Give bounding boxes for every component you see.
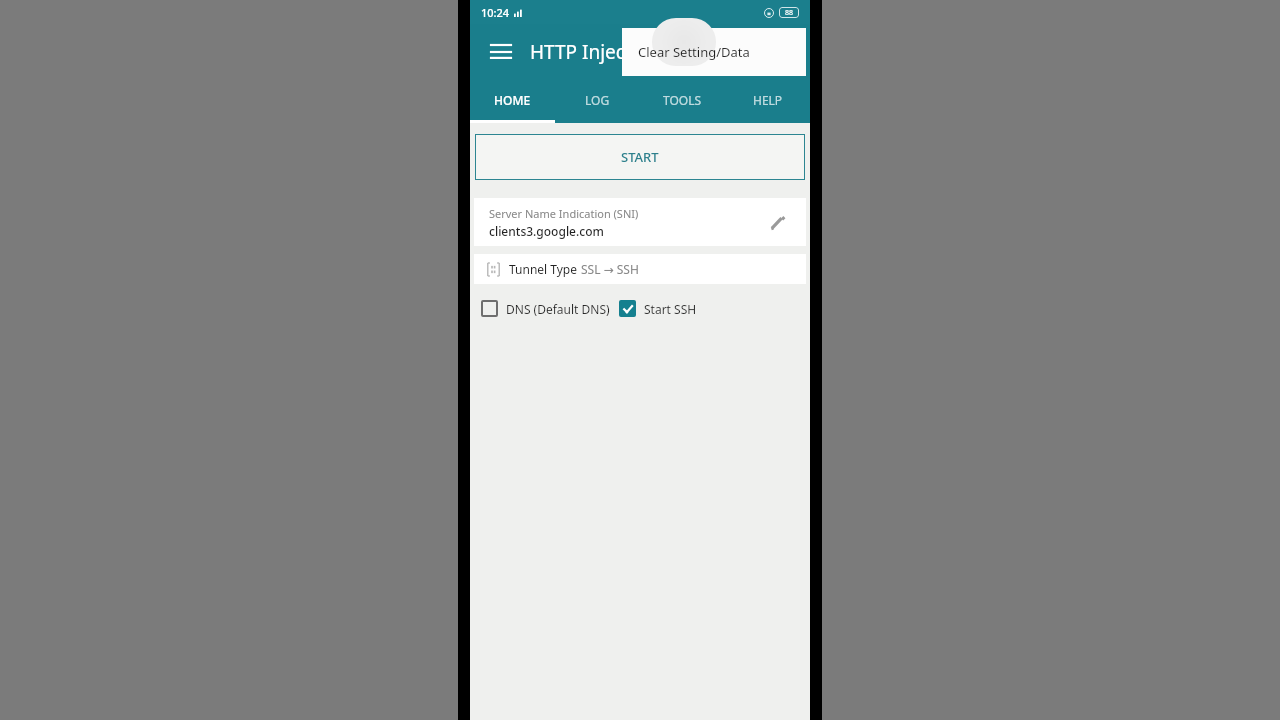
- staticText: Server Name Indication (SNI): [489, 206, 639, 221]
- button[interactable]: LOG: [555, 80, 640, 120]
- staticText: clients3.google.com: [489, 223, 604, 239]
- staticText: HTTP Injector: [530, 39, 652, 65]
- staticText: LOG: [585, 92, 610, 108]
- staticText: HELP: [753, 92, 783, 108]
- staticText: HOME: [494, 92, 531, 108]
- button[interactable]: Server Name Indication (SNI): [474, 198, 806, 246]
- staticText: TOOLS: [663, 92, 702, 108]
- button[interactable]: DNS (Default DNS): [481, 300, 610, 317]
- staticText: Start SSH: [644, 301, 697, 317]
- button[interactable]: Edit SNI: [762, 207, 792, 237]
- button[interactable]: Clear Setting/Data: [622, 28, 806, 76]
- staticText: Tunnel Type: [509, 261, 581, 277]
- button[interactable]: Open navigation drawer: [484, 35, 518, 69]
- staticText: 10:24: [481, 5, 510, 20]
- button[interactable]: Start SSH: [619, 300, 697, 317]
- button[interactable]: Tunnel Type: [474, 254, 806, 284]
- button[interactable]: HELP: [725, 80, 810, 120]
- staticText: DNS (Default DNS): [506, 301, 610, 317]
- staticText: SSL → SSH: [581, 261, 639, 277]
- staticText: START: [621, 148, 659, 166]
- button[interactable]: TOOLS: [640, 80, 725, 120]
- button[interactable]: START: [475, 134, 805, 180]
- staticText: 88: [785, 8, 794, 18]
- button[interactable]: HOME: [470, 80, 555, 120]
- staticText: Clear Setting/Data: [638, 43, 750, 61]
